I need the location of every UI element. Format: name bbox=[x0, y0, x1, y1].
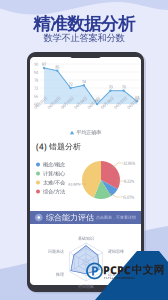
staticText: 04月05日 bbox=[86, 106, 102, 111]
staticText: 基础知识 bbox=[78, 236, 94, 241]
staticText: 推理 bbox=[56, 272, 64, 277]
staticText: 8.22% bbox=[124, 178, 134, 184]
staticText: 04月07日 bbox=[113, 106, 129, 111]
staticText: 问题表达 bbox=[48, 249, 64, 254]
staticText: 综合/方法 bbox=[43, 188, 65, 195]
staticText: 32.86% bbox=[123, 160, 135, 166]
button[interactable]: 综合能力评估 bbox=[0, 0, 168, 300]
staticText: 综合能力评估 bbox=[46, 213, 94, 222]
staticText: 中文网 bbox=[131, 263, 164, 276]
staticText: 04月04日 bbox=[73, 106, 89, 111]
staticText: 太难/不会 bbox=[43, 179, 65, 186]
staticText: 04月03日 bbox=[60, 106, 76, 111]
staticText: 87 bbox=[42, 62, 46, 67]
staticText: 04月06日 bbox=[99, 106, 115, 111]
staticText: 62 bbox=[135, 95, 139, 100]
staticText: 04月01日 bbox=[33, 106, 49, 111]
staticText: 点击图表，可查看详情 bbox=[96, 215, 136, 220]
staticText: 90 bbox=[34, 62, 38, 67]
staticText: 84 bbox=[34, 70, 38, 75]
staticText: 70 bbox=[108, 84, 112, 90]
staticText: 72 bbox=[69, 82, 73, 87]
staticText: 60 bbox=[34, 102, 38, 107]
staticText: P bbox=[91, 263, 98, 279]
staticText: 计算/粗心 bbox=[43, 170, 65, 177]
staticText: 空间想象 bbox=[78, 284, 94, 289]
staticText: PCPC bbox=[103, 263, 131, 277]
staticText: 66 bbox=[34, 94, 38, 99]
staticText: 04月08日 bbox=[126, 106, 142, 111]
staticText: PCPCZHONGWENWANG bbox=[104, 276, 135, 280]
staticText: 60 bbox=[95, 98, 99, 103]
staticText: (4) 错题分析 bbox=[36, 141, 81, 152]
staticText: 15.07% bbox=[122, 194, 134, 200]
staticText: 平均正确率 bbox=[76, 129, 101, 136]
staticText: 数学不止答案和分数 bbox=[43, 32, 124, 44]
staticText: 78 bbox=[34, 78, 38, 83]
staticText: 运算 bbox=[108, 272, 116, 277]
staticText: 逻辑思维 bbox=[108, 249, 124, 254]
staticText: 85 bbox=[55, 64, 59, 70]
staticText: 概念/概念 bbox=[43, 161, 65, 168]
staticText: 43.84% bbox=[68, 181, 80, 187]
staticText: 精准数据分析 bbox=[33, 13, 135, 35]
staticText: 72 bbox=[34, 86, 38, 91]
staticText: 74 bbox=[82, 79, 86, 84]
staticText: 04月02日 bbox=[46, 106, 62, 111]
staticText: 70 bbox=[122, 84, 126, 90]
